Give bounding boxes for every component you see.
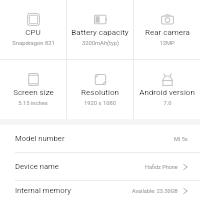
staticText: Battery capacity — [71, 28, 129, 37]
staticText: 1920 x 1080 — [84, 100, 116, 107]
button[interactable]: Internal memory — [0, 181, 200, 200]
staticText: Model number — [15, 134, 65, 143]
staticText: 3200mAh(typ) — [82, 40, 119, 47]
button[interactable]: Rear camera — [134, 0, 200, 59]
button[interactable]: CPU — [0, 0, 66, 59]
button[interactable]: Resolution — [67, 60, 133, 119]
staticText: Internal memory — [15, 186, 71, 195]
staticText: Android version — [139, 88, 195, 97]
button[interactable]: Device name — [0, 153, 200, 180]
staticText: CPU — [25, 28, 41, 37]
staticText: Resolution — [81, 88, 119, 97]
staticText: Device name — [15, 162, 59, 171]
button[interactable]: Screen size — [0, 60, 66, 119]
staticText: Hafidz Phone — [145, 164, 178, 170]
staticText: 7.0 — [163, 100, 172, 107]
staticText: Snapdragon 821 — [12, 40, 55, 47]
staticText: 12MP — [159, 40, 175, 47]
button[interactable]: Model number — [0, 125, 200, 152]
button[interactable]: Android version — [134, 60, 200, 119]
staticText: Available: 23.30GB — [132, 188, 178, 194]
button[interactable]: Battery capacity — [67, 0, 133, 59]
staticText: Rear camera — [145, 28, 190, 37]
staticText: Screen size — [13, 88, 54, 97]
staticText: MI 5s — [174, 136, 188, 142]
staticText: 5.15 inches — [18, 100, 48, 107]
